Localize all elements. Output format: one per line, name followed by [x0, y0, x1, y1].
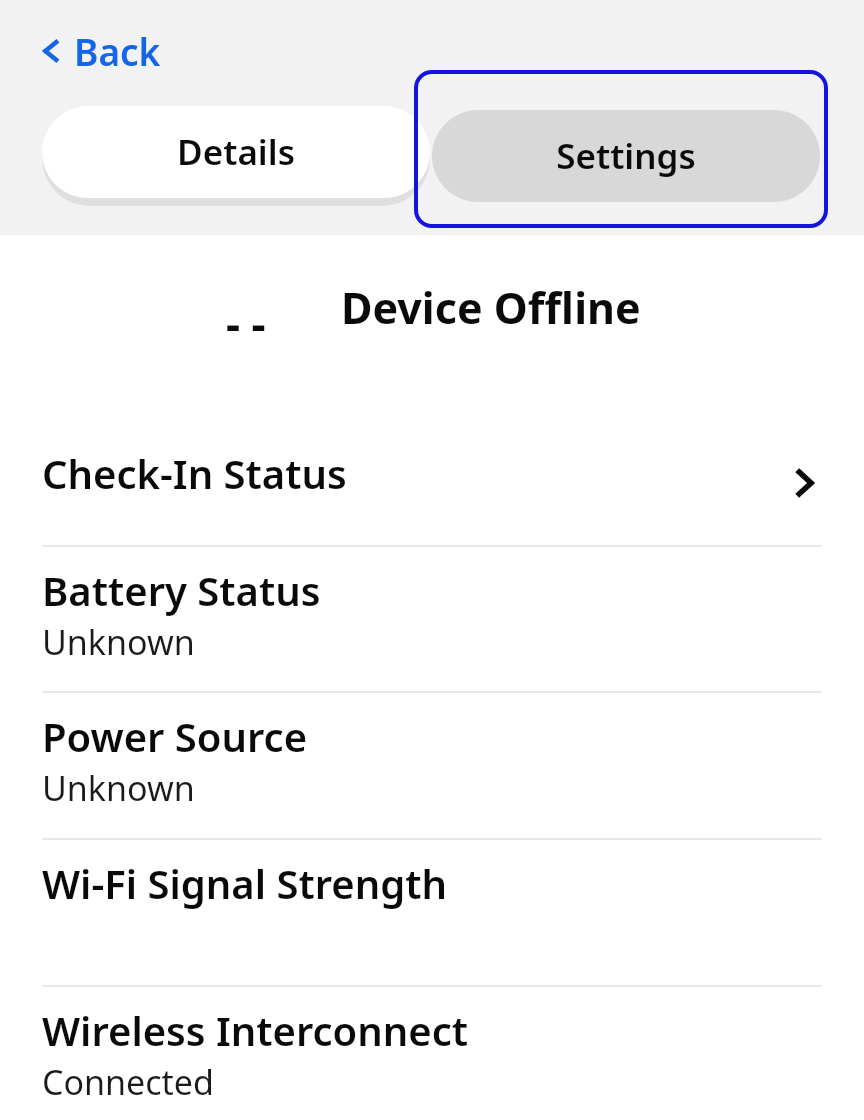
staticText: Unknown: [42, 619, 195, 665]
button[interactable]: Wireless Interconnect: [0, 987, 864, 1120]
button[interactable]: Check-In Status: [0, 430, 864, 545]
staticText: Device Offline: [341, 278, 641, 337]
staticText: Battery Status: [42, 563, 321, 617]
button[interactable]: Battery Status: [0, 547, 864, 691]
button[interactable]: Details: [42, 106, 430, 198]
staticText: - -: [226, 293, 266, 353]
button[interactable]: Wi-Fi Signal Strength: [0, 840, 864, 985]
other: Open Check-In Status: [788, 466, 822, 500]
button[interactable]: Back: [38, 26, 161, 76]
button[interactable]: Power Source: [0, 693, 864, 838]
staticText: Check-In Status: [42, 446, 347, 500]
staticText: Back: [74, 26, 161, 76]
staticText: Power Source: [42, 709, 308, 763]
staticText: Settings: [556, 132, 696, 180]
staticText: Wireless Interconnect: [42, 1003, 468, 1057]
button[interactable]: Settings: [432, 110, 820, 202]
staticText: Details: [177, 128, 295, 176]
staticText: Connected: [42, 1059, 214, 1105]
staticText: Wi-Fi Signal Strength: [42, 856, 447, 910]
staticText: Unknown: [42, 765, 195, 811]
